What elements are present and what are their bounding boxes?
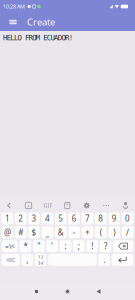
- button[interactable]: 4: [42, 212, 53, 224]
- staticText: ): [113, 227, 115, 238]
- staticText: _: [45, 227, 49, 238]
- button[interactable]: !: [86, 240, 98, 252]
- button[interactable]: .: [98, 254, 110, 266]
- button[interactable]: ,: [21, 254, 33, 266]
- staticText: 7: [85, 213, 90, 224]
- staticText: +: [85, 227, 90, 238]
- staticText: 1: [5, 213, 10, 224]
- button[interactable]: 3: [28, 212, 40, 224]
- button[interactable]: -: [68, 226, 80, 238]
- staticText: ": [37, 241, 40, 251]
- staticText: 3: [38, 260, 40, 265]
- button[interactable]: 0: [122, 212, 133, 224]
- button[interactable]: Settings: [77, 199, 96, 212]
- button[interactable]: _: [42, 226, 53, 238]
- button[interactable]: Previous: [0, 199, 19, 212]
- button[interactable]: 1: [2, 212, 13, 224]
- button[interactable]: ": [33, 240, 45, 252]
- button[interactable]: 1: [35, 254, 46, 266]
- button[interactable]: ): [108, 226, 120, 238]
- staticText: /: [126, 227, 129, 238]
- staticText: 10:28 AM: [3, 3, 25, 10]
- button[interactable]: 7: [82, 212, 93, 224]
- staticText: 3: [32, 213, 37, 224]
- staticText: 5: [58, 213, 63, 224]
- staticText: 8: [98, 213, 103, 224]
- button[interactable]: $: [28, 226, 40, 238]
- staticText: 2: [18, 213, 23, 224]
- staticText: ABC: [6, 256, 15, 263]
- button[interactable]: 9: [108, 212, 120, 224]
- button[interactable]: Menu: [4, 13, 22, 31]
- button[interactable]: /: [122, 226, 133, 238]
- staticText: 9: [112, 213, 117, 224]
- staticText: 0: [125, 213, 130, 224]
- staticText: ': [51, 241, 53, 251]
- button[interactable]: =\<: [2, 240, 18, 252]
- button[interactable]: ?: [100, 240, 111, 252]
- staticText: !: [91, 241, 93, 251]
- staticText: 2: [41, 254, 43, 260]
- button[interactable]: :: [60, 240, 71, 252]
- staticText: GIF: [43, 202, 52, 209]
- staticText: #: [18, 227, 23, 238]
- staticText: HELLO FROM ECUADOR!: [3, 33, 73, 42]
- button[interactable]: 2: [15, 212, 27, 224]
- staticText: :: [64, 241, 66, 251]
- staticText: ;: [78, 241, 80, 251]
- button[interactable]: Recents: [21, 283, 52, 300]
- staticText: (: [100, 227, 102, 238]
- button[interactable]: #: [15, 226, 27, 238]
- button[interactable]: ;: [73, 240, 85, 252]
- button[interactable]: More: [96, 199, 116, 212]
- staticText: @: [4, 227, 11, 238]
- button[interactable]: Voice input: [116, 199, 135, 212]
- staticText: 6: [72, 213, 77, 224]
- staticText: =\<: [5, 242, 15, 251]
- button[interactable]: ABC: [2, 254, 20, 266]
- button[interactable]: Emoji: [19, 199, 38, 212]
- button[interactable]: @: [2, 226, 13, 238]
- staticText: .: [103, 255, 105, 265]
- button[interactable]: ': [46, 240, 58, 252]
- button[interactable]: &: [55, 226, 67, 238]
- button[interactable]: Back: [83, 283, 114, 300]
- button[interactable]: (: [95, 226, 107, 238]
- staticText: Create: [27, 16, 55, 28]
- staticText: $: [32, 227, 37, 238]
- staticText: *: [23, 241, 27, 251]
- button[interactable]: Home: [52, 283, 83, 300]
- staticText: 4: [45, 213, 50, 224]
- button[interactable]: +: [82, 226, 93, 238]
- button[interactable]: 5: [55, 212, 67, 224]
- button[interactable]: Clipboard: [58, 199, 77, 212]
- button[interactable]: GIF: [38, 199, 58, 212]
- staticText: 1: [38, 254, 40, 260]
- staticText: -: [73, 227, 76, 238]
- button[interactable]: *: [20, 240, 31, 252]
- staticText: ,: [26, 255, 28, 265]
- button[interactable]: 8: [95, 212, 107, 224]
- button[interactable]: [112, 254, 133, 266]
- button[interactable]: [113, 240, 133, 252]
- staticText: &: [58, 227, 64, 238]
- staticText: 4: [41, 260, 43, 265]
- staticText: ?: [104, 241, 107, 251]
- button[interactable]: 6: [68, 212, 80, 224]
